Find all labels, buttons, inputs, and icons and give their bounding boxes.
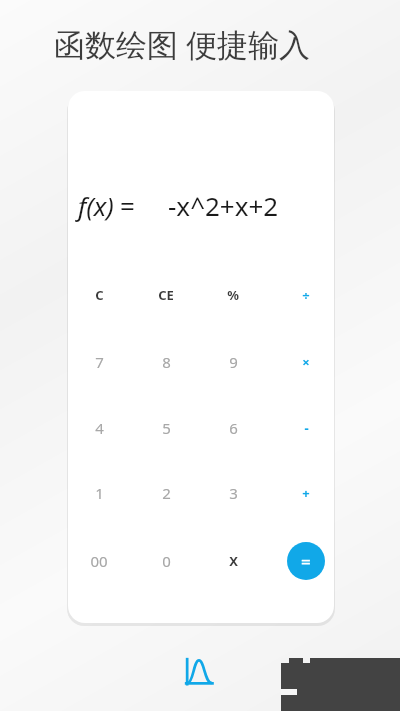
staticText: = — [301, 550, 311, 573]
staticText: ÷ — [302, 286, 310, 304]
staticText: % — [227, 286, 239, 304]
staticText: 1 — [95, 483, 104, 503]
button[interactable]: CE — [140, 273, 192, 317]
staticText: 7 — [95, 352, 104, 372]
staticText: 00 — [90, 551, 108, 571]
button[interactable]: + — [280, 471, 332, 515]
staticText: 函数绘图 便捷输入 — [54, 23, 311, 65]
staticText: f(x) — [78, 188, 114, 223]
button[interactable]: 3 — [207, 471, 259, 515]
staticText: -x^2+x+2 — [168, 188, 279, 223]
staticText: C — [95, 286, 104, 304]
button[interactable]: × — [280, 340, 332, 384]
button[interactable]: = — [287, 542, 325, 580]
button[interactable]: 0 — [140, 539, 192, 583]
staticText: 8 — [162, 352, 171, 372]
staticText: 3 — [229, 483, 238, 503]
button[interactable]: Plot graph — [181, 654, 217, 690]
button[interactable]: - — [280, 406, 332, 450]
button[interactable]: 1 — [73, 471, 125, 515]
button[interactable]: 5 — [140, 406, 192, 450]
button[interactable]: 7 — [73, 340, 125, 384]
staticText: × — [302, 353, 310, 371]
button[interactable]: 9 — [207, 340, 259, 384]
staticText: 4 — [95, 418, 104, 438]
staticText: - — [304, 419, 309, 437]
staticText: 9 — [229, 352, 238, 372]
button[interactable]: ÷ — [280, 273, 332, 317]
button[interactable]: 00 — [73, 539, 125, 583]
button[interactable]: f(x) — [68, 176, 334, 236]
staticText: 5 — [162, 418, 171, 438]
button[interactable]: 6 — [207, 406, 259, 450]
staticText: = — [120, 188, 135, 223]
button[interactable]: 8 — [140, 340, 192, 384]
button[interactable]: % — [207, 273, 259, 317]
staticText: 0 — [162, 551, 171, 571]
button[interactable]: 2 — [140, 471, 192, 515]
staticText: 6 — [229, 418, 238, 438]
staticText: 2 — [162, 483, 171, 503]
staticText: X — [229, 552, 238, 570]
button[interactable]: X — [207, 539, 259, 583]
staticText: + — [302, 484, 310, 502]
button[interactable]: 4 — [73, 406, 125, 450]
button[interactable]: C — [73, 273, 125, 317]
staticText: CE — [158, 286, 174, 304]
